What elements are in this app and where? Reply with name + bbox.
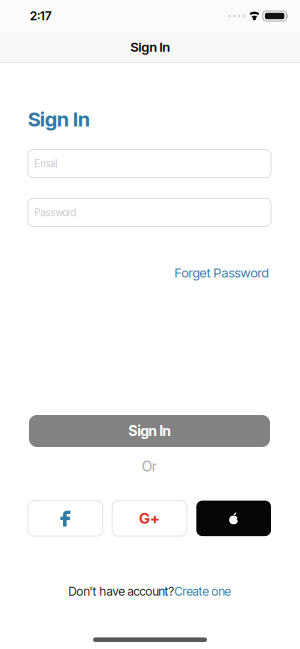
- button[interactable]: Create one: [174, 584, 230, 599]
- staticText: 2:17: [30, 9, 51, 23]
- staticText: Sign In: [128, 423, 170, 439]
- staticText: Sign In: [130, 39, 169, 55]
- button[interactable]: Sign In: [29, 415, 270, 447]
- staticText: G+: [139, 509, 160, 527]
- button[interactable]: [196, 501, 271, 536]
- staticText: Or: [142, 458, 157, 474]
- staticText: Sign In: [28, 107, 90, 131]
- staticText: Forget Password: [174, 265, 268, 280]
- staticText: Create one: [174, 584, 230, 599]
- staticText: Password: [34, 207, 76, 218]
- staticText: Don't have account?: [68, 584, 174, 599]
- button[interactable]: Password: [28, 198, 271, 226]
- button[interactable]: [28, 501, 103, 536]
- button[interactable]: G+: [112, 501, 187, 536]
- button[interactable]: Forget Password: [174, 265, 271, 281]
- staticText: Email: [34, 158, 57, 169]
- button[interactable]: Email: [28, 149, 271, 177]
